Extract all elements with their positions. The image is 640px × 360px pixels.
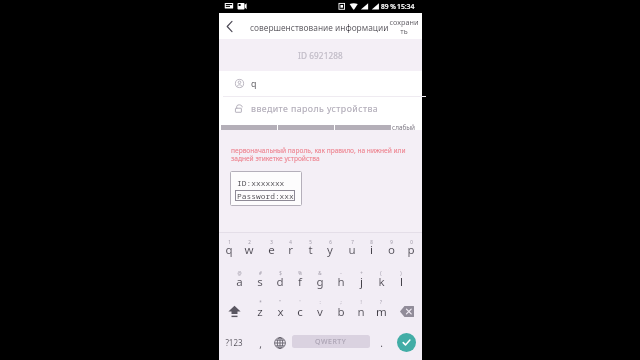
button[interactable]: ) (391, 264, 411, 294)
staticText: $ (279, 270, 282, 276)
staticText: c (297, 304, 303, 320)
staticText: z (257, 304, 263, 320)
staticText: q (225, 242, 233, 258)
staticText: введите пароль устройства (251, 103, 379, 115)
staticText: & (318, 270, 322, 276)
staticText: % (298, 270, 302, 276)
button[interactable]: 3 (260, 233, 280, 263)
staticText: + (360, 270, 363, 276)
button[interactable]: ? (371, 296, 391, 326)
button[interactable]: : (310, 296, 330, 326)
staticText: ? (380, 299, 382, 305)
staticText: f (298, 274, 302, 290)
staticText: , (259, 337, 262, 351)
staticText: 3 (270, 239, 273, 245)
button[interactable]: 7 (341, 233, 361, 263)
staticText: 4 (289, 239, 292, 245)
staticText: 15:34 (397, 2, 415, 11)
button[interactable]: 0 (401, 233, 421, 263)
staticText: p (407, 242, 415, 258)
staticText: Password:xxx (237, 191, 294, 202)
staticText: b (337, 304, 345, 320)
staticText: u (348, 242, 356, 258)
staticText: l (400, 274, 403, 290)
staticText: 7 (351, 239, 354, 245)
button[interactable]: Enter (391, 327, 421, 357)
staticText: 0 (410, 239, 413, 245)
staticText: ID 6921288 (298, 50, 343, 61)
staticText: k (378, 274, 385, 290)
staticText: g (316, 274, 324, 290)
staticText: 8 (370, 239, 373, 245)
staticText: @ (237, 270, 242, 276)
button[interactable]: 2 (239, 233, 259, 263)
staticText: e (268, 242, 275, 258)
staticText: t (308, 242, 313, 258)
staticText: x (277, 304, 284, 320)
staticText: ; (340, 299, 342, 305)
staticText: 1 (228, 239, 231, 245)
staticText: o (388, 242, 395, 258)
button[interactable]: 5 (300, 233, 320, 263)
button[interactable]: Back (219, 13, 241, 39)
staticText: QWERTY (315, 337, 347, 347)
button[interactable]: 6 (320, 233, 340, 263)
button[interactable]: ' (290, 296, 310, 326)
button[interactable]: 1 (219, 233, 239, 263)
staticText: первоначальный пароль, как правило, на н… (231, 146, 410, 163)
button[interactable]: # (249, 264, 269, 294)
button[interactable]: - (330, 264, 350, 294)
button[interactable]: + (351, 264, 371, 294)
staticText: - (340, 270, 342, 276)
button[interactable]: * (249, 296, 269, 326)
button[interactable]: ?123 (219, 327, 249, 357)
staticText: : (319, 299, 321, 305)
staticText: m (376, 304, 387, 320)
staticText: i (370, 242, 373, 258)
staticText: ID:xxxxxxx (237, 178, 285, 189)
button[interactable]: ! (351, 296, 371, 326)
staticText: n (357, 304, 365, 320)
staticText: * (259, 299, 262, 305)
button[interactable]: % (290, 264, 310, 294)
button[interactable]: , (249, 328, 269, 358)
staticText: r (288, 242, 293, 258)
staticText: 5 (309, 239, 312, 245)
staticText: совершенствование информации (250, 22, 389, 33)
button[interactable]: ; (330, 296, 350, 326)
staticText: a (236, 274, 243, 290)
button[interactable]: ( (371, 264, 391, 294)
button[interactable]: Change keyboard language (270, 327, 290, 357)
button[interactable]: 8 (361, 233, 381, 263)
staticText: . (380, 336, 383, 350)
staticText: y (327, 242, 333, 258)
button[interactable]: . (371, 328, 391, 358)
button[interactable]: q (219, 71, 422, 97)
staticText: сохранить (389, 17, 419, 36)
staticText: ) (400, 270, 402, 276)
button[interactable]: & (310, 264, 330, 294)
staticText: ?123 (225, 337, 243, 348)
staticText: 89 % (381, 2, 396, 11)
staticText: h (337, 274, 345, 290)
staticText: 2 (248, 239, 251, 245)
button[interactable]: введите пароль устройства (219, 97, 422, 125)
staticText: " (279, 299, 281, 305)
button[interactable]: Space (292, 327, 370, 357)
staticText: слабый (392, 123, 416, 132)
staticText: v (317, 304, 323, 320)
button[interactable]: Shift (219, 296, 249, 326)
button[interactable]: Backspace (391, 296, 421, 326)
button[interactable]: $ (270, 264, 290, 294)
staticText: s (257, 274, 263, 290)
button[interactable]: 4 (280, 233, 300, 263)
staticText: # (259, 270, 262, 276)
staticText: ( (380, 270, 382, 276)
button[interactable]: сохранить (389, 13, 419, 39)
staticText: 6 (329, 239, 332, 245)
button[interactable]: 9 (381, 233, 401, 263)
staticText: ' (299, 299, 301, 305)
button[interactable]: @ (229, 264, 249, 294)
staticText: 9 (390, 239, 393, 245)
button[interactable]: " (270, 296, 290, 326)
